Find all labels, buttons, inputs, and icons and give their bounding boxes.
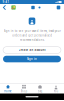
staticText: Sign in to see your saved items, track y… bbox=[3, 29, 60, 42]
button[interactable]: Home bbox=[9, 4, 17, 11]
button[interactable]: Account bbox=[54, 4, 62, 11]
staticText: You bbox=[53, 89, 58, 93]
button[interactable]: Create an account bbox=[3, 47, 61, 53]
staticText: Create an account bbox=[18, 48, 45, 52]
button[interactable]: Back bbox=[1, 4, 7, 11]
button[interactable]: You bbox=[48, 84, 64, 93]
staticText: Home bbox=[4, 89, 12, 93]
button[interactable]: Sign in bbox=[3, 56, 61, 62]
button[interactable]: Notifications bbox=[36, 4, 42, 11]
button[interactable]: Home bbox=[0, 84, 16, 93]
staticText: Sign in bbox=[27, 57, 37, 61]
button[interactable]: Search bbox=[29, 4, 36, 11]
button[interactable]: Bag bbox=[32, 84, 48, 93]
button[interactable]: Shop bbox=[16, 84, 32, 93]
staticText: 9:41 bbox=[2, 0, 9, 4]
staticText: Bag bbox=[37, 89, 42, 93]
staticText: Shop bbox=[20, 89, 27, 93]
